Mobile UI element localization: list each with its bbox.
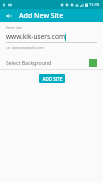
button[interactable]: Navigate up [3, 10, 15, 22]
button[interactable]: Select Background [0, 56, 103, 69]
staticText: 11:15 [89, 2, 100, 7]
staticText: ADD SITE [42, 76, 63, 82]
staticText: Select Background [6, 59, 52, 66]
staticText: i.e. www.example.com [6, 45, 44, 50]
button[interactable]: ADD SITE [39, 74, 65, 83]
staticText: www.kik-users.com [6, 32, 65, 41]
staticText: Enter site [6, 25, 22, 30]
staticText: Add New Site [19, 11, 64, 21]
